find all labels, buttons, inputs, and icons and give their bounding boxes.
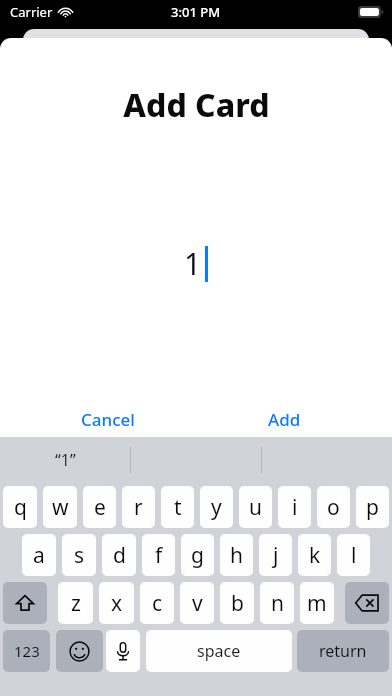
button[interactable]: Cancel [63,402,153,437]
button[interactable]: g [181,534,214,576]
button[interactable]: return [297,630,389,672]
button[interactable]: w [43,486,77,528]
staticText: w [52,493,69,522]
staticText: y [211,493,222,522]
staticText: m [307,589,327,618]
button[interactable]: Add [250,402,319,437]
staticText: 123 [14,641,40,661]
staticText: 1 [184,243,202,284]
button[interactable]: y [200,486,233,528]
button[interactable]: Dictation [106,630,140,672]
staticText: space [197,640,241,662]
button[interactable]: u [239,486,272,528]
staticText: j [273,541,279,570]
button[interactable]: c [140,582,174,624]
staticText: a [33,541,45,570]
button[interactable]: z [58,582,93,624]
button[interactable]: j [259,534,292,576]
staticText: o [327,493,340,522]
button[interactable]: v [180,582,214,624]
staticText: c [152,589,163,618]
button[interactable]: p [356,486,389,528]
button[interactable]: i [278,486,311,528]
staticText: u [249,493,262,522]
staticText: b [231,589,244,618]
staticText: “1” [55,449,76,471]
staticText: d [113,541,126,570]
button[interactable]: f [142,534,175,576]
button[interactable]: space [146,630,292,672]
staticText: i [292,493,298,522]
button[interactable]: s [62,534,96,576]
staticText: 3:01 PM [171,3,221,21]
button[interactable]: o [317,486,350,528]
button[interactable]: b [220,582,254,624]
button[interactable]: Delete [345,582,389,624]
button[interactable]: l [337,534,370,576]
button[interactable]: e [83,486,116,528]
button[interactable]: Shift [3,582,47,624]
button[interactable]: q [3,486,37,528]
button[interactable]: h [220,534,253,576]
staticText: t [174,493,182,522]
staticText: p [366,493,379,522]
staticText: n [271,589,284,618]
staticText: l [351,541,357,570]
button[interactable]: m [300,582,334,624]
button[interactable]: t [161,486,194,528]
staticText: g [191,541,204,570]
staticText: v [192,589,203,618]
button[interactable]: Emoji [56,630,103,672]
button[interactable]: d [102,534,136,576]
button[interactable]: 123 [3,630,50,672]
staticText: Add [268,408,301,431]
button[interactable]: r [122,486,155,528]
staticText: f [155,541,163,570]
staticText: x [111,589,123,618]
staticText: r [134,493,143,522]
button[interactable]: x [99,582,134,624]
staticText: Add Card [123,83,270,127]
staticText: z [71,589,81,618]
staticText: Carrier [10,3,53,21]
button[interactable]: n [260,582,294,624]
button[interactable]: a [22,534,56,576]
staticText: q [14,493,27,522]
staticText: e [94,493,106,522]
button[interactable]: k [298,534,331,576]
staticText: s [74,541,85,570]
staticText: Cancel [81,408,135,431]
staticText: return [319,640,367,662]
staticText: h [230,541,243,570]
staticText: k [309,541,321,570]
